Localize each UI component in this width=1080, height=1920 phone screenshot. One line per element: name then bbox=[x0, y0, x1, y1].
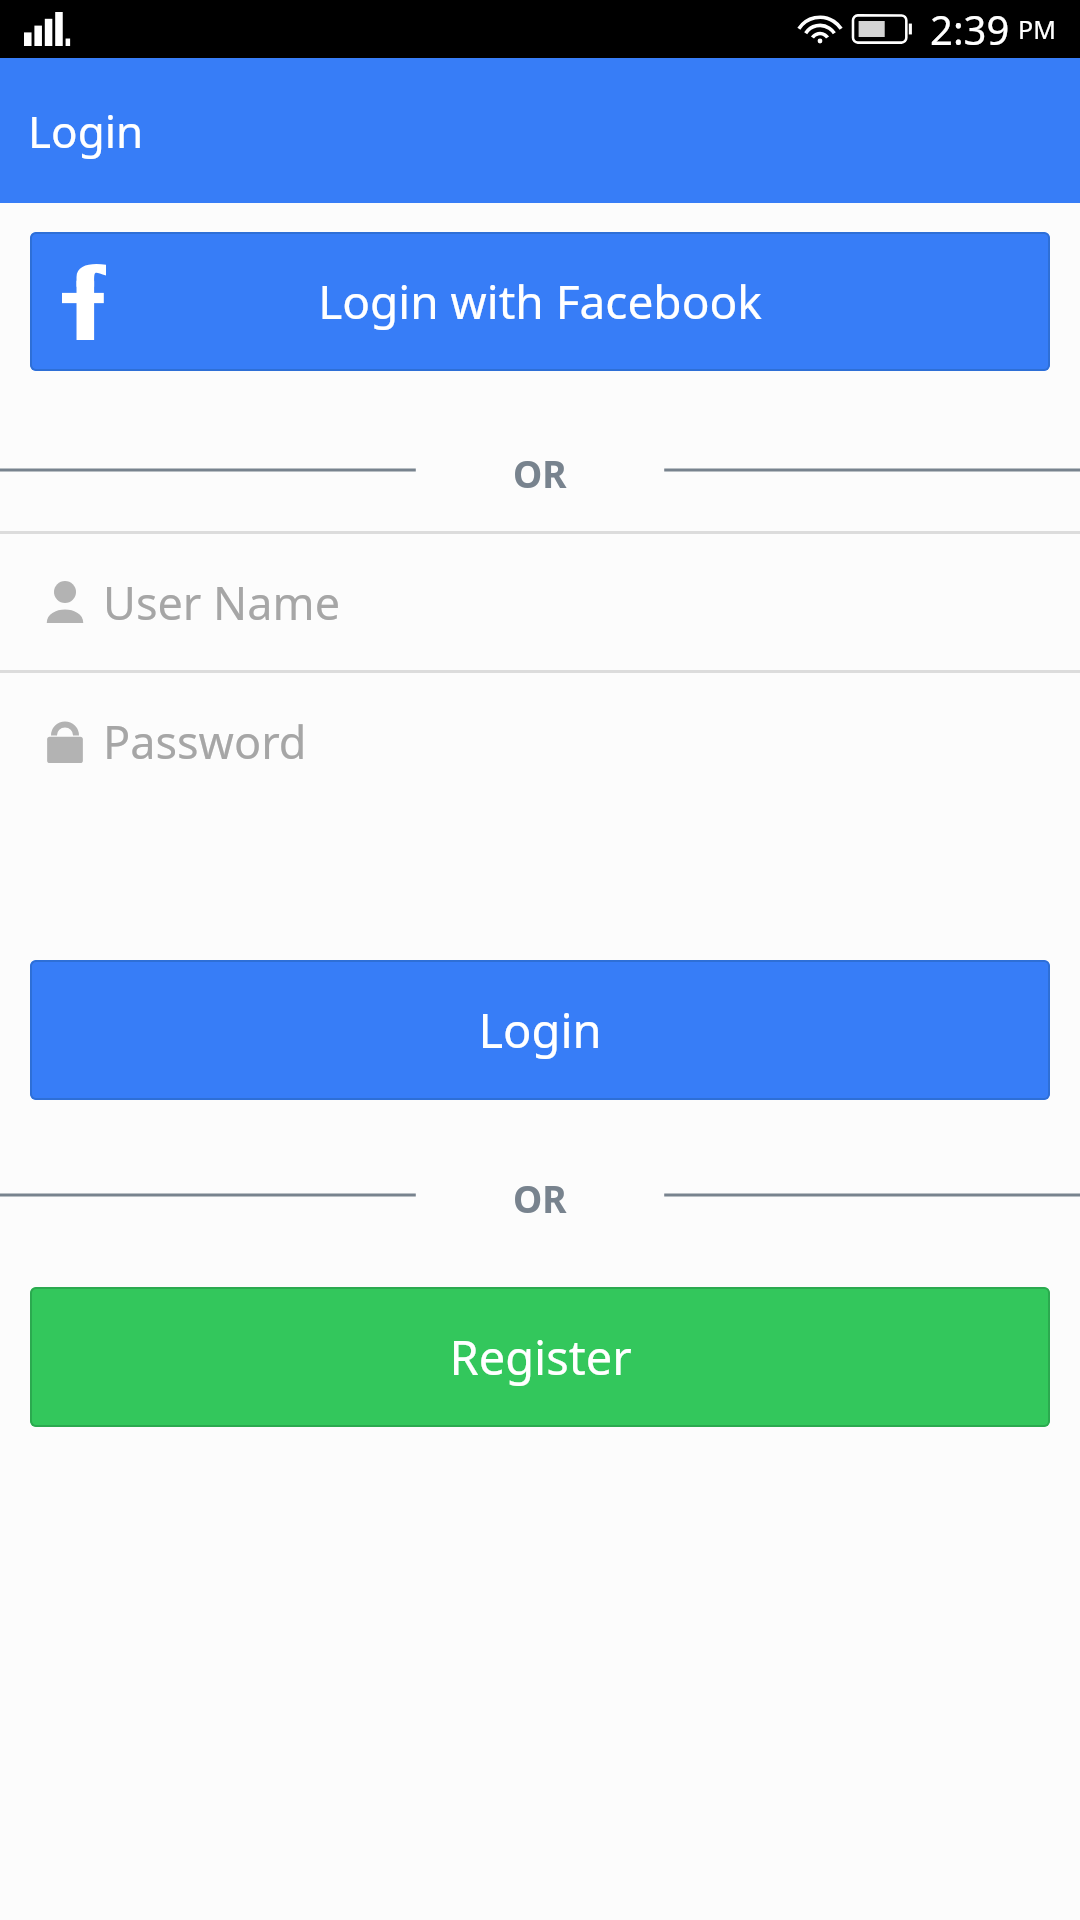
staticText: Login bbox=[478, 998, 602, 1062]
button[interactable]: User name bbox=[0, 534, 1080, 670]
staticText: 2:39 bbox=[930, 2, 1010, 56]
staticText: User Name bbox=[103, 572, 341, 633]
staticText: OR bbox=[513, 1173, 567, 1217]
button[interactable]: Login bbox=[30, 960, 1050, 1100]
staticText: Password bbox=[103, 711, 307, 772]
staticText: PM bbox=[1018, 12, 1056, 46]
other: User name bbox=[46, 581, 84, 623]
staticText: Register bbox=[449, 1325, 632, 1389]
staticText: Login bbox=[28, 101, 144, 161]
staticText: OR bbox=[513, 448, 567, 492]
staticText: Login with Facebook bbox=[318, 270, 762, 333]
button[interactable]: Password bbox=[0, 673, 1080, 809]
other: Password bbox=[46, 718, 84, 764]
button[interactable]: Register bbox=[30, 1287, 1050, 1427]
button[interactable]: Login with Facebook bbox=[30, 232, 1050, 371]
